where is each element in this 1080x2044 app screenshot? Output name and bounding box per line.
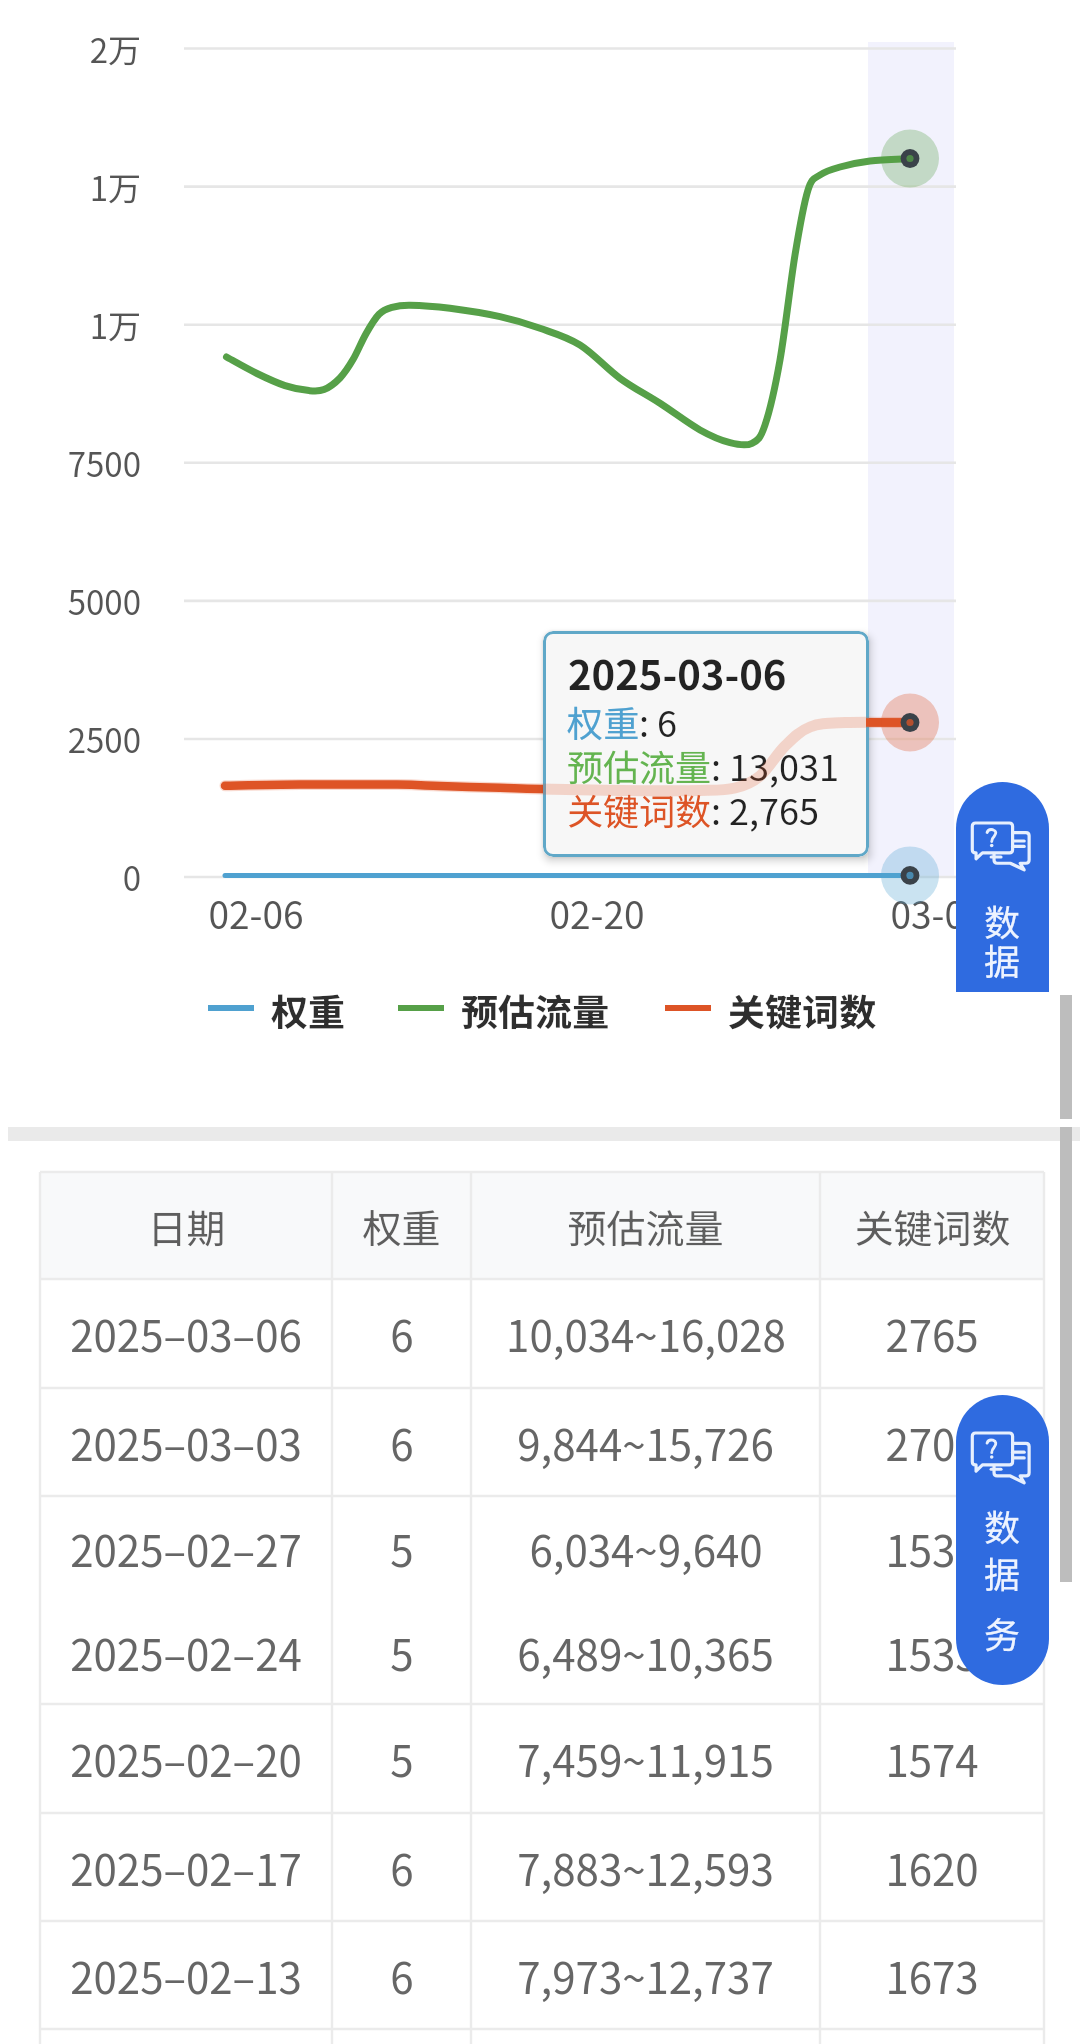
staticText: 5 bbox=[390, 1518, 414, 1579]
staticText: 5 bbox=[390, 1622, 414, 1683]
staticText: 1620 bbox=[885, 1837, 979, 1898]
staticText: 6 bbox=[390, 1303, 414, 1364]
staticText: 1万 bbox=[0, 163, 141, 211]
staticText: 2765 bbox=[885, 1303, 979, 1364]
staticText: 预估流量: 13,031 bbox=[567, 739, 839, 791]
staticText: 02-20 bbox=[487, 886, 707, 940]
staticText: 9,844~15,726 bbox=[517, 1412, 774, 1473]
button[interactable]: 数据服务 bbox=[956, 1395, 1049, 1685]
staticText: 2025‒03‒03 bbox=[70, 1412, 302, 1473]
staticText: 预估流量 bbox=[567, 1198, 724, 1254]
staticText: 数 bbox=[984, 1499, 1021, 1545]
staticText: 1533 bbox=[885, 1622, 979, 1683]
staticText: 1万 bbox=[0, 301, 141, 349]
staticText: 2025-03-06 bbox=[568, 644, 787, 702]
staticText: 2025‒02‒24 bbox=[70, 1622, 302, 1683]
staticText: 据 bbox=[984, 1546, 1021, 1592]
staticText: 权重: 6 bbox=[567, 695, 678, 747]
staticText: 预估流量 bbox=[461, 983, 609, 1033]
button[interactable] bbox=[40, 1704, 1044, 1813]
button[interactable] bbox=[40, 1279, 1044, 1388]
staticText: 0 bbox=[0, 853, 141, 901]
staticText: 关键词数 bbox=[728, 983, 876, 1033]
button[interactable] bbox=[40, 1813, 1044, 1921]
staticText: 6 bbox=[390, 1945, 414, 2006]
staticText: 7,973~12,737 bbox=[517, 1945, 774, 2006]
staticText: 权重 bbox=[362, 1198, 441, 1254]
staticText: 务 bbox=[984, 1606, 1021, 1652]
staticText: 6 bbox=[390, 1837, 414, 1898]
staticText: 6,489~10,365 bbox=[517, 1622, 774, 1683]
staticText: 权重 bbox=[271, 983, 345, 1033]
staticText: 02-06 bbox=[146, 886, 366, 940]
staticText: 2025‒02‒20 bbox=[70, 1728, 302, 1789]
staticText: 2500 bbox=[0, 715, 141, 763]
staticText: 2025‒03‒06 bbox=[70, 1303, 302, 1364]
staticText: 7,883~12,593 bbox=[517, 1837, 774, 1898]
staticText: 日期 bbox=[147, 1198, 226, 1254]
staticText: 1574 bbox=[885, 1728, 979, 1789]
staticText: 03-06 bbox=[828, 886, 1048, 940]
staticText: 据 bbox=[984, 933, 1021, 979]
staticText: 2025‒02‒27 bbox=[70, 1518, 302, 1579]
staticText: 1673 bbox=[885, 1945, 979, 2006]
staticText: 2025‒02‒17 bbox=[70, 1837, 302, 1898]
button[interactable]: 关键词数 bbox=[665, 983, 876, 1033]
button[interactable]: 数据服务 bbox=[956, 782, 1049, 992]
staticText: 1533 bbox=[885, 1518, 979, 1579]
staticText: 2万 bbox=[0, 25, 141, 73]
button[interactable]: 预估流量 bbox=[398, 983, 609, 1033]
staticText: 5000 bbox=[0, 577, 141, 625]
staticText: 6,034~9,640 bbox=[529, 1518, 763, 1579]
button[interactable] bbox=[40, 1921, 1044, 2029]
button[interactable]: 权重 bbox=[208, 983, 345, 1033]
staticText: 2025‒02‒13 bbox=[70, 1945, 302, 2006]
staticText: 数 bbox=[984, 894, 1021, 940]
staticText: 2700 bbox=[885, 1412, 979, 1473]
staticText: 7500 bbox=[0, 439, 141, 487]
staticText: 关键词数: 2,765 bbox=[567, 783, 820, 835]
staticText: 7,459~11,915 bbox=[517, 1728, 774, 1789]
button[interactable] bbox=[40, 1496, 1044, 1600]
staticText: 10,034~16,028 bbox=[506, 1303, 786, 1364]
button[interactable] bbox=[40, 1600, 1044, 1704]
staticText: 5 bbox=[390, 1728, 414, 1789]
staticText: 关键词数 bbox=[854, 1198, 1011, 1254]
button[interactable] bbox=[40, 1388, 1044, 1496]
staticText: 6 bbox=[390, 1412, 414, 1473]
